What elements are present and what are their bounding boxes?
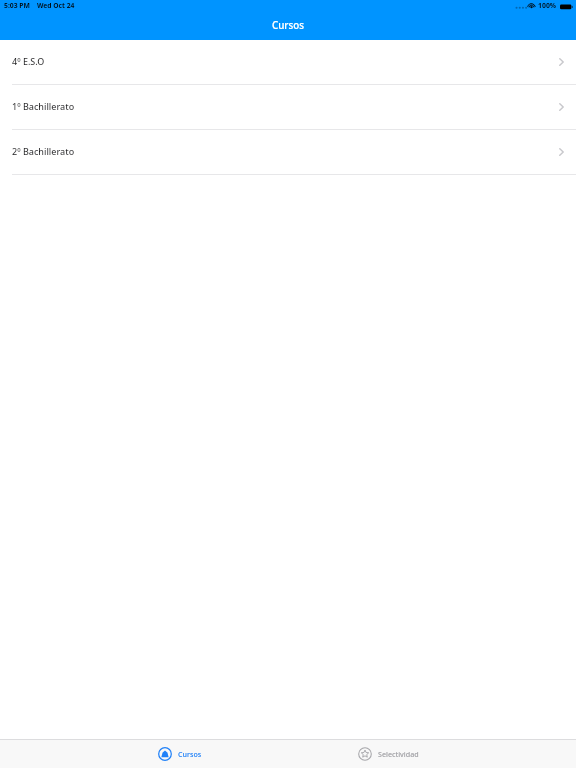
staticText: 4º E.S.O [12, 55, 45, 67]
button[interactable]: Cursos [75, 740, 284, 768]
staticText: 1º Bachillerato [12, 100, 75, 112]
staticText: Selectividad [378, 749, 419, 759]
button[interactable]: Selectividad [284, 740, 493, 768]
staticText: Wed Oct 24 [37, 1, 75, 10]
staticText: Cursos [272, 19, 305, 32]
staticText: 100% [538, 1, 557, 10]
button[interactable]: 1º Bachillerato [0, 85, 576, 130]
staticText: 5:03 PM [4, 1, 30, 10]
button[interactable]: 4º E.S.O [0, 40, 576, 85]
button[interactable]: 2º Bachillerato [0, 130, 576, 175]
staticText: 2º Bachillerato [12, 145, 75, 157]
staticText: Cursos [178, 749, 202, 759]
